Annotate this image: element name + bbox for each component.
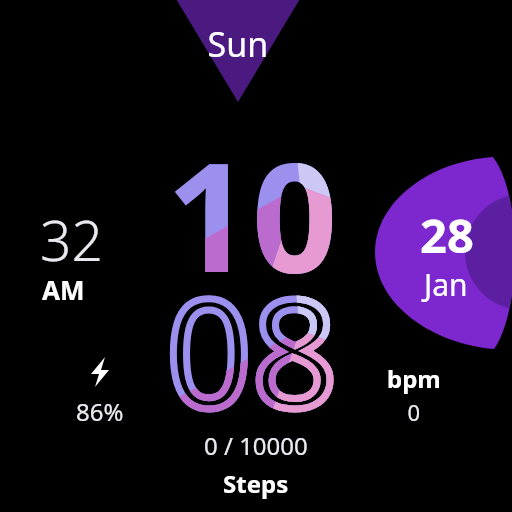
button[interactable]: 32 AM (22, 196, 130, 304)
button[interactable]: Date, 28 January (374, 152, 512, 352)
button[interactable]: Day of week, Sunday (150, 0, 328, 104)
button[interactable]: Steps 0 of 10000 (176, 422, 336, 494)
button[interactable]: Battery 86 percent (58, 352, 144, 422)
button[interactable]: Heart rate 0 bpm (366, 354, 462, 422)
button[interactable]: Time 10:08 (186, 110, 326, 350)
